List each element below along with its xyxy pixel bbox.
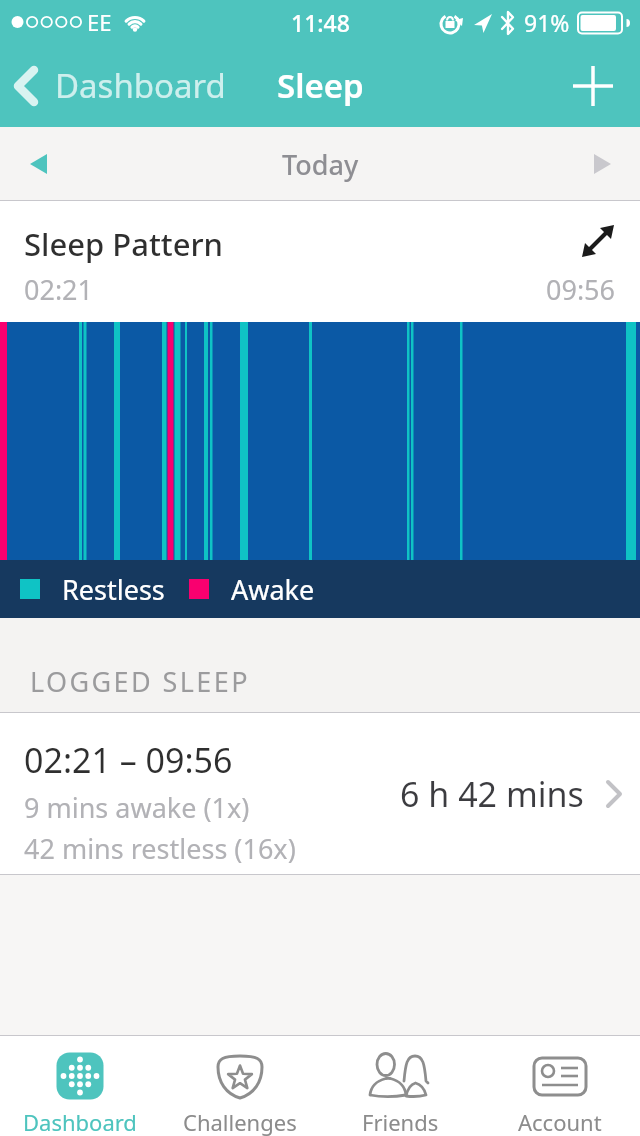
staticText: Dashboard: [23, 1107, 137, 1136]
staticText: 42 mins restless (16x): [24, 830, 296, 867]
staticText: 91%: [524, 7, 570, 38]
button[interactable]: Challenges: [160, 1036, 320, 1136]
button[interactable]: Dashboard: [13, 63, 226, 108]
staticText: Awake: [231, 571, 315, 608]
staticText: Sleep: [277, 63, 364, 108]
button[interactable]: [16, 142, 60, 186]
staticText: LOGGED SLEEP: [30, 663, 250, 700]
staticText: 6 h 42 mins: [400, 771, 584, 817]
button[interactable]: [572, 65, 614, 107]
staticText: 09:56: [546, 271, 616, 308]
button[interactable]: 02:21 – 09:56: [0, 713, 640, 874]
staticText: Restless: [62, 571, 165, 608]
staticText: Today: [282, 146, 359, 183]
staticText: 02:21 – 09:56: [24, 737, 233, 783]
staticText: Sleep Pattern: [24, 223, 224, 265]
staticText: Friends: [362, 1107, 439, 1136]
staticText: 9 mins awake (1x): [24, 789, 250, 826]
button[interactable]: Friends: [320, 1036, 480, 1136]
button[interactable]: [578, 221, 618, 261]
button[interactable]: Account: [480, 1036, 640, 1136]
staticText: Account: [518, 1107, 602, 1136]
button[interactable]: [580, 142, 624, 186]
staticText: Challenges: [183, 1107, 297, 1136]
button[interactable]: Dashboard: [0, 1036, 160, 1136]
staticText: 11:48: [291, 7, 350, 38]
staticText: Dashboard: [55, 63, 226, 108]
staticText: EE: [87, 7, 112, 37]
staticText: 02:21: [24, 271, 94, 308]
